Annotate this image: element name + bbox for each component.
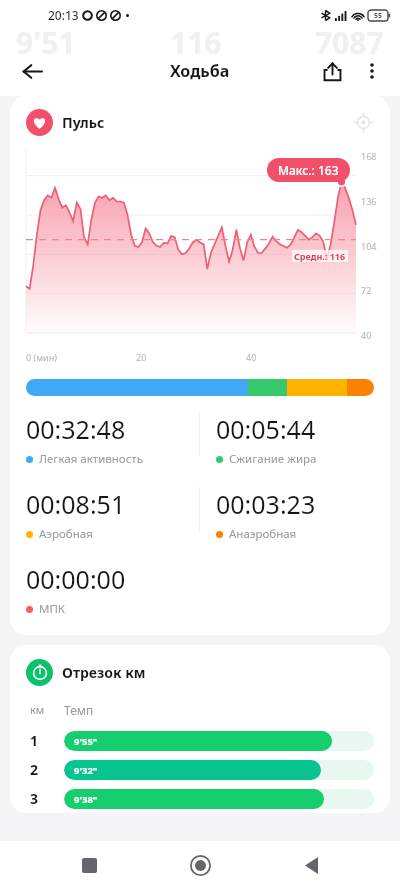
staticText: 00:00:00: [26, 562, 126, 596]
button[interactable]: Обзор: [67, 843, 111, 887]
button[interactable]: 1: [10, 726, 390, 755]
staticText: Сжигание жира: [229, 451, 317, 467]
staticText: 20: [136, 351, 246, 363]
staticText: 136: [361, 195, 377, 207]
button[interactable]: 00:08:51: [26, 487, 126, 542]
button[interactable]: Главный экран: [178, 843, 222, 887]
staticText: Анаэробная: [229, 526, 297, 542]
staticText: Ходьба: [170, 60, 230, 82]
button[interactable]: 00:32:48: [26, 412, 143, 467]
staticText: 40: [246, 351, 356, 363]
button[interactable]: Отрезок км: [26, 659, 146, 686]
staticText: 00:32:48: [26, 412, 126, 446]
staticText: 20:13: [48, 7, 79, 23]
staticText: Аэробная: [39, 526, 93, 542]
button[interactable]: 2: [10, 755, 390, 784]
staticText: МПК: [39, 601, 66, 617]
staticText: Макс.: 163: [278, 162, 339, 178]
button[interactable]: Поделиться: [312, 51, 352, 91]
button[interactable]: Ещё: [352, 51, 392, 91]
staticText: 00:03:23: [216, 487, 316, 521]
staticText: уд/м: [186, 63, 206, 75]
staticText: 00:08:51: [26, 487, 126, 521]
staticText: Темп: [64, 702, 94, 718]
button[interactable]: Целевая зона: [348, 107, 378, 137]
staticText: 2: [30, 760, 64, 779]
staticText: 40: [361, 329, 372, 341]
staticText: 3: [30, 789, 64, 808]
staticText: Пульс: [62, 113, 105, 132]
staticText: 9'32": [74, 764, 98, 777]
button[interactable]: Назад: [289, 843, 333, 887]
button[interactable]: Назад: [12, 51, 52, 91]
staticText: 9'38": [74, 793, 98, 806]
button[interactable]: 3: [10, 784, 390, 813]
button[interactable]: 00:00:00: [26, 562, 126, 617]
staticText: Отрезок км: [62, 663, 146, 682]
staticText: 00:05:44: [216, 412, 316, 446]
staticText: км: [30, 702, 64, 717]
button[interactable]: Пульс: [26, 109, 105, 136]
staticText: 55: [374, 11, 383, 21]
staticText: 72: [361, 284, 372, 296]
staticText: 116: [170, 22, 222, 63]
staticText: 7087: [315, 22, 384, 63]
staticText: 168: [361, 150, 377, 162]
staticText: 0 (мин): [26, 351, 136, 363]
staticText: 104: [361, 240, 377, 252]
staticText: 1: [30, 731, 64, 750]
staticText: Легкая активность: [39, 451, 143, 467]
button[interactable]: 00:05:44: [216, 412, 317, 467]
button[interactable]: 00:03:23: [216, 487, 316, 542]
staticText: 9'51: [16, 22, 76, 63]
staticText: 9'55": [74, 735, 98, 748]
staticText: Средн.: 116: [294, 250, 346, 262]
button[interactable]: Макс.: 163: [267, 158, 350, 182]
